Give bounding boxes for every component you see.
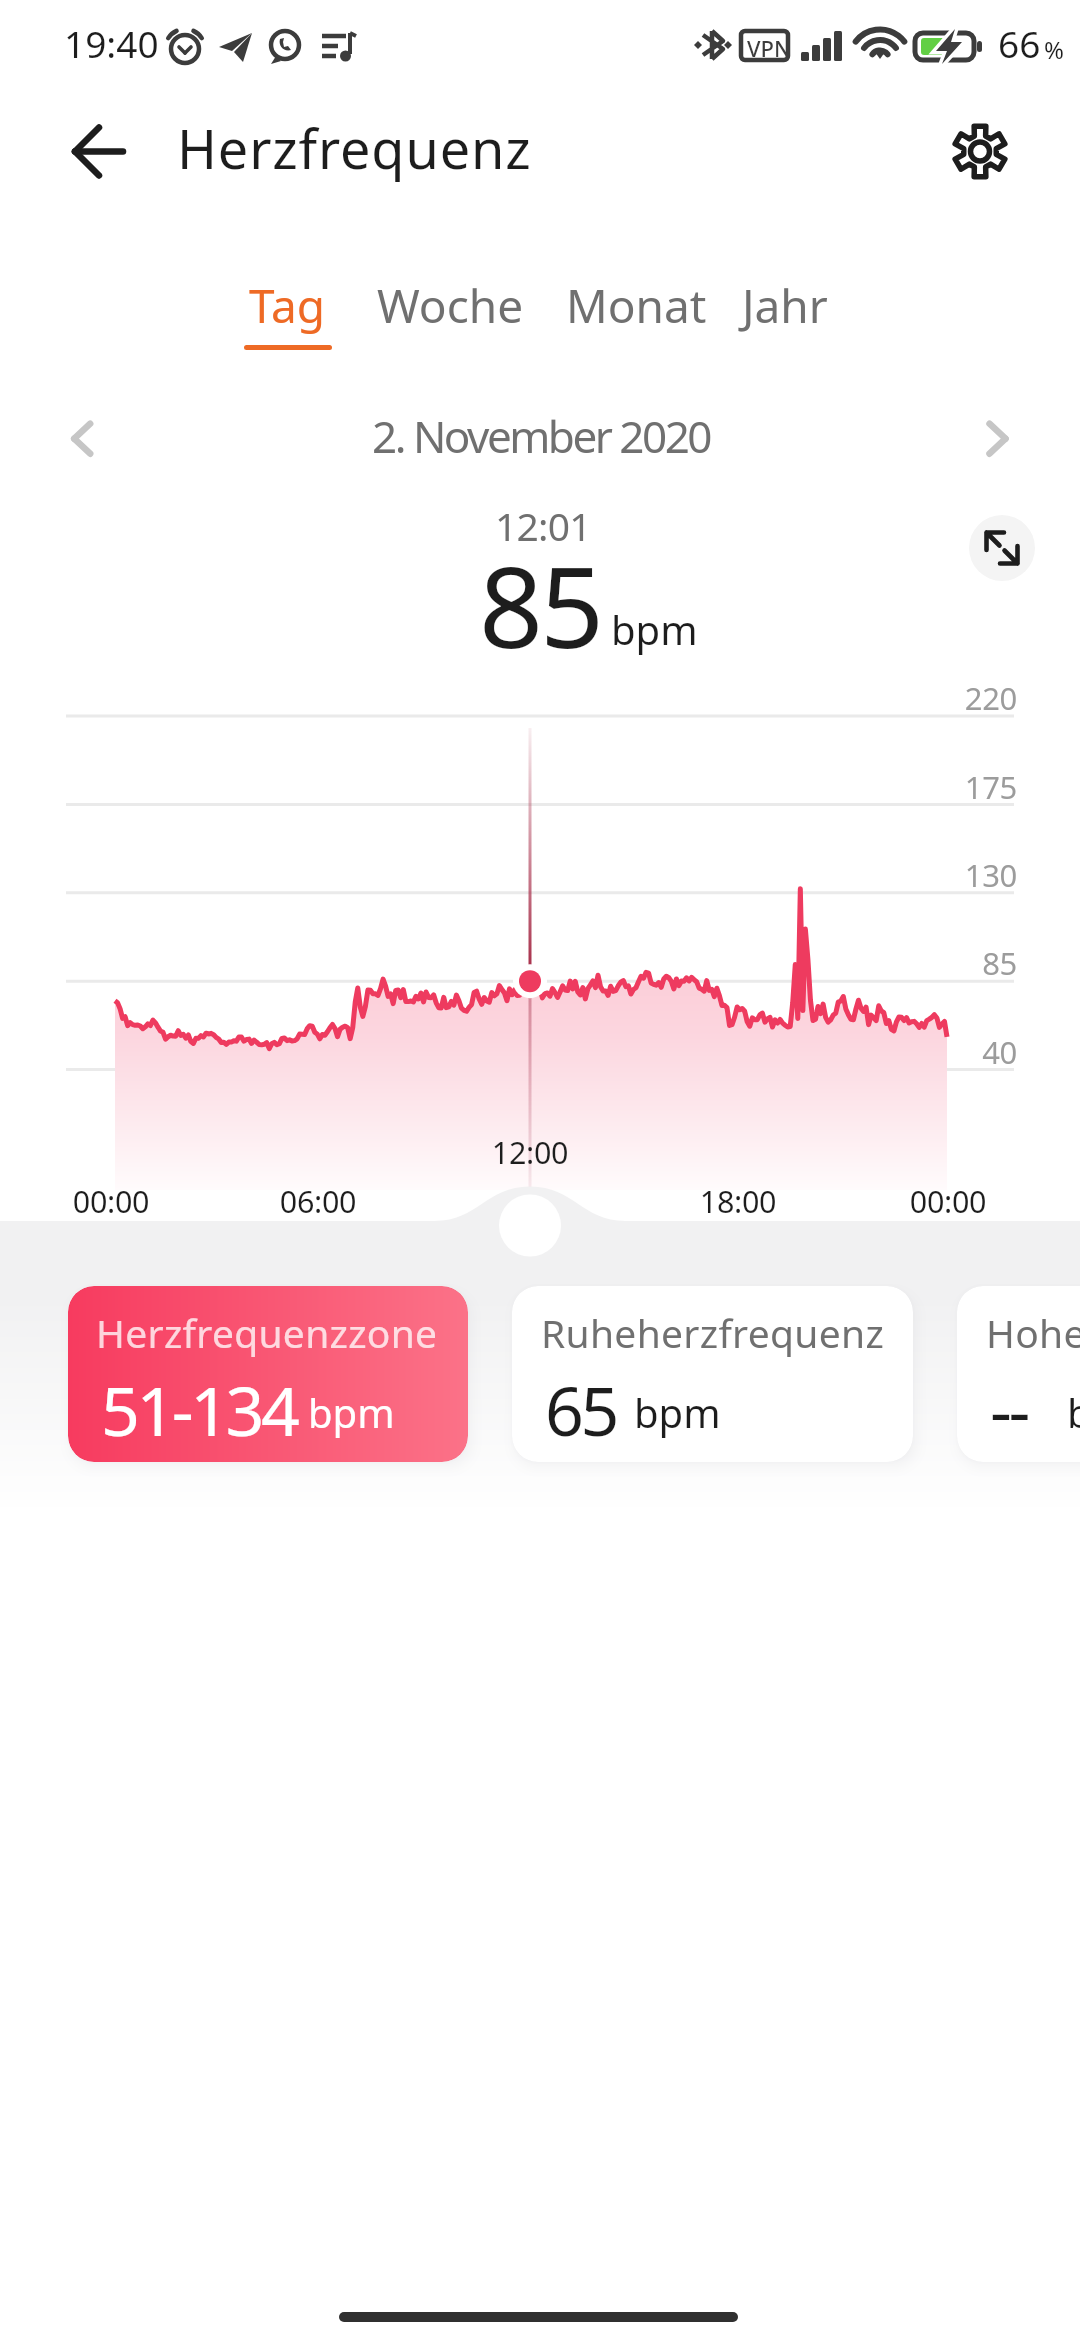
staticText: Tag	[249, 274, 325, 337]
staticText: 51-134	[101, 1363, 297, 1456]
staticText: 85	[479, 528, 602, 681]
button[interactable]: Fullscreen	[969, 515, 1035, 581]
staticText: 12:00	[420, 1131, 640, 1173]
staticText: %	[1044, 33, 1064, 66]
button[interactable]: Next day	[960, 403, 1032, 475]
staticText: Herzfrequenz	[177, 111, 532, 185]
button[interactable]: 2. November 2020	[291, 406, 791, 466]
staticText: 19:40	[64, 18, 159, 68]
button[interactable]: Jahr	[726, 270, 847, 352]
staticText: 66	[998, 18, 1041, 68]
button[interactable]: Herzfrequenzzone	[68, 1286, 468, 1462]
staticText: 06:00	[208, 1180, 428, 1222]
staticText: 2. November 2020	[291, 406, 791, 466]
staticText: 175	[877, 766, 1017, 808]
staticText: Hohe Herzfrequenz	[986, 1306, 1080, 1359]
button[interactable]: Tag	[233, 270, 344, 352]
staticText: 18:00	[628, 1180, 848, 1222]
staticText: VPN	[747, 33, 792, 63]
staticText: bpm	[634, 1385, 721, 1439]
button[interactable]: Monat	[550, 270, 719, 352]
staticText: 85	[877, 942, 1017, 984]
staticText: 40	[877, 1031, 1017, 1073]
staticText: --	[990, 1363, 1027, 1456]
staticText: bpm	[1067, 1385, 1080, 1439]
staticText: Monat	[566, 274, 707, 337]
staticText: 00:00	[1, 1180, 221, 1222]
button[interactable]: Settings	[936, 108, 1024, 196]
staticText: Ruheherzfrequenz	[541, 1306, 885, 1359]
staticText: bpm	[308, 1385, 395, 1439]
staticText: 220	[877, 677, 1017, 719]
button[interactable]: Back	[44, 108, 132, 196]
staticText: 12:01	[495, 499, 591, 552]
staticText: Jahr	[742, 274, 828, 337]
staticText: Herzfrequenzzone	[96, 1306, 438, 1359]
button[interactable]: Previous day	[48, 403, 120, 475]
staticText: 00:00	[838, 1180, 1058, 1222]
staticText: 65	[545, 1363, 616, 1456]
button[interactable]: Hohe Herzfrequenz	[957, 1286, 1080, 1462]
button[interactable]: Woche	[361, 270, 536, 352]
staticText: 130	[877, 854, 1017, 896]
staticText: Woche	[377, 274, 524, 337]
staticText: bpm	[611, 602, 698, 656]
button[interactable]: Ruheherzfrequenz	[512, 1286, 913, 1462]
